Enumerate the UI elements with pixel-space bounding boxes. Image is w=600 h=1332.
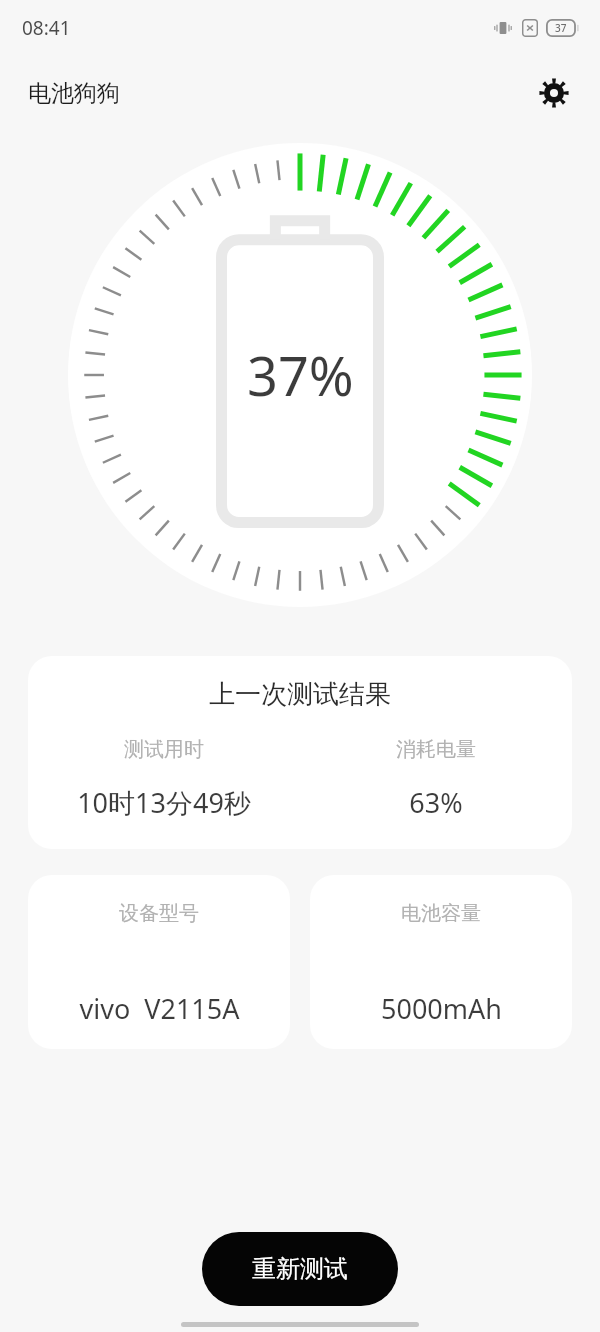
staticText: 5000mAh: [381, 990, 502, 1027]
staticText: 测试用时: [124, 737, 204, 762]
staticText: 37: [555, 21, 567, 35]
staticText: 电池狗狗: [28, 79, 120, 108]
staticText: 63%: [409, 784, 463, 821]
button[interactable]: Settings: [532, 71, 576, 115]
staticText: 08:41: [22, 15, 71, 41]
staticText: vivo V2115A: [79, 990, 240, 1027]
staticText: 消耗电量: [396, 737, 476, 762]
staticText: 电池容量: [401, 901, 481, 926]
button[interactable]: 设备型号: [28, 875, 290, 1049]
staticText: 37%: [247, 338, 354, 412]
staticText: 10时13分49秒: [77, 784, 251, 821]
staticText: 设备型号: [119, 901, 199, 926]
staticText: 重新测试: [252, 1254, 348, 1284]
button[interactable]: 电池容量: [310, 875, 572, 1049]
button[interactable]: 重新测试: [202, 1232, 398, 1306]
button[interactable]: 上一次测试结果: [28, 656, 572, 849]
staticText: 上一次测试结果: [28, 678, 572, 711]
